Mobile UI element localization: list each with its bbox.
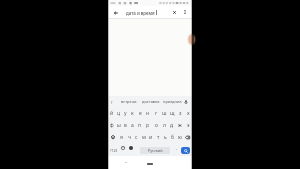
staticText: ?123 [110, 148, 118, 153]
button[interactable]: Change language [128, 145, 134, 151]
staticText: ы [117, 122, 121, 129]
staticText: е [139, 110, 142, 117]
button[interactable]: л [160, 119, 168, 131]
button[interactable]: о [152, 119, 160, 131]
button[interactable]: Search [181, 147, 190, 154]
button[interactable]: у [122, 107, 129, 119]
button[interactable]: щ [168, 107, 176, 119]
button[interactable]: э [184, 119, 192, 131]
button[interactable]: и [147, 131, 154, 143]
button[interactable]: ь [162, 131, 169, 143]
button[interactable]: Emoji [120, 145, 126, 151]
staticText: у [124, 110, 127, 117]
button[interactable]: More options [181, 8, 189, 16]
staticText: й [110, 110, 114, 117]
button[interactable]: ф [108, 119, 115, 131]
staticText: Г [111, 100, 113, 105]
button[interactable]: праздник [163, 96, 182, 107]
staticText: щ [170, 110, 175, 117]
staticText: п [138, 122, 142, 129]
staticText: в [124, 122, 127, 129]
staticText: ь [164, 134, 167, 141]
button[interactable]: з [176, 107, 184, 119]
button[interactable]: н [144, 107, 152, 119]
button[interactable]: в [122, 119, 129, 131]
staticText: ш [162, 110, 167, 117]
button[interactable]: доставка [142, 96, 160, 107]
button[interactable]: . [174, 145, 180, 151]
button[interactable]: с [133, 131, 140, 143]
staticText: праздник [163, 99, 182, 104]
staticText: з [179, 110, 182, 117]
staticText: л [163, 122, 166, 129]
button[interactable]: й [108, 107, 115, 119]
staticText: с [135, 134, 138, 141]
button[interactable]: ю [176, 131, 183, 143]
button[interactable]: Русский [140, 147, 170, 154]
button[interactable]: д [168, 119, 176, 131]
button[interactable]: Clear text [170, 8, 179, 17]
button[interactable]: встречи [121, 96, 137, 107]
button[interactable]: ы [115, 119, 122, 131]
staticText: ч [128, 134, 131, 141]
button[interactable]: я [118, 131, 125, 143]
staticText: Русский [148, 148, 163, 153]
button[interactable]: а [129, 119, 136, 131]
staticText: а [131, 122, 134, 129]
staticText: д [170, 122, 174, 129]
staticText: х [187, 110, 190, 117]
button[interactable]: т [155, 131, 162, 143]
button[interactable]: м [140, 131, 147, 143]
button[interactable]: е [136, 107, 144, 119]
staticText: доставка [142, 99, 160, 104]
staticText: б [171, 134, 174, 141]
staticText: я [120, 134, 123, 141]
button[interactable]: ц [115, 107, 122, 119]
staticText: и [149, 134, 153, 141]
staticText: р [146, 122, 150, 129]
button[interactable]: Voice input [182, 98, 189, 105]
staticText: г [155, 110, 158, 117]
button[interactable]: г [152, 107, 160, 119]
button[interactable]: б [169, 131, 176, 143]
staticText: ж [178, 122, 182, 129]
staticText: ю [178, 134, 182, 141]
button[interactable]: к [129, 107, 136, 119]
button[interactable]: ?123 [109, 145, 119, 155]
staticText: встречи [121, 99, 137, 104]
button[interactable]: Back [111, 8, 120, 17]
staticText: ц [117, 110, 121, 117]
staticText: дата и время [126, 10, 155, 16]
staticText: н [146, 110, 150, 117]
staticText: о [155, 122, 158, 129]
staticText: э [187, 122, 190, 129]
button[interactable]: Shift [109, 131, 117, 143]
button[interactable]: Backspace [183, 131, 191, 143]
button[interactable]: п [136, 119, 144, 131]
staticText: м [142, 134, 146, 141]
staticText: ф [110, 122, 114, 129]
button[interactable]: ч [126, 131, 133, 143]
button[interactable]: ж [176, 119, 184, 131]
staticText: . [176, 145, 178, 151]
staticText: т [157, 134, 160, 141]
staticText: к [131, 110, 134, 117]
button[interactable]: р [144, 119, 152, 131]
button[interactable]: х [184, 107, 192, 119]
button[interactable]: ш [160, 107, 168, 119]
